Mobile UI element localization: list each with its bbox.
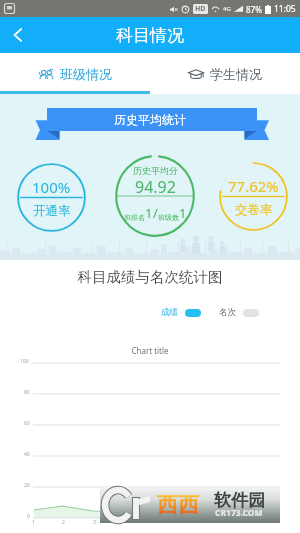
button[interactable]: 班级情况 (0, 53, 150, 94)
staticText: Chart title (0, 345, 300, 356)
staticText: 77.62% (228, 176, 279, 196)
staticText: 2 (62, 519, 65, 526)
staticText: 西西 (157, 492, 199, 518)
staticText: 开通率 (33, 203, 71, 219)
staticText: 班排名 (124, 213, 145, 222)
staticText: 班级数 (158, 213, 179, 222)
staticText: 1 (32, 519, 35, 526)
staticText: 学生情况 (210, 66, 262, 82)
staticText: 80 (24, 389, 30, 396)
staticText: 历史平均分 (133, 165, 178, 176)
staticText: HD (195, 4, 206, 14)
staticText: 1 (145, 204, 153, 222)
staticText: 20 (24, 482, 30, 489)
staticText: 班级情况 (60, 66, 112, 82)
staticText: 1 (179, 204, 187, 222)
staticText: 60 (24, 420, 30, 427)
staticText: 100% (32, 177, 71, 197)
staticText: / (153, 204, 158, 222)
staticText: 软件园 (214, 490, 265, 511)
button[interactable]: Back (0, 17, 36, 53)
staticText: 成绩 (161, 307, 178, 318)
staticText: 3 (93, 519, 96, 526)
button[interactable]: 学生情况 (150, 53, 300, 94)
staticText: 交卷率 (235, 202, 273, 218)
staticText: 科目成绩与名次统计图 (0, 268, 300, 286)
button[interactable]: 成绩 (161, 307, 201, 318)
staticText: 名次 (219, 307, 236, 318)
staticText: 94.92 (135, 176, 176, 198)
staticText: 科目情况 (116, 25, 184, 46)
staticText: 0 (27, 513, 30, 520)
button[interactable]: 名次 (219, 307, 259, 318)
staticText: 40 (24, 451, 30, 458)
staticText: 11:05 (274, 3, 296, 15)
staticText: 4G (223, 5, 231, 13)
staticText: 100 (20, 358, 29, 365)
staticText: 历史平均统计 (114, 112, 186, 127)
staticText: CR173.COM (215, 507, 263, 519)
staticText: 87% (246, 4, 262, 15)
